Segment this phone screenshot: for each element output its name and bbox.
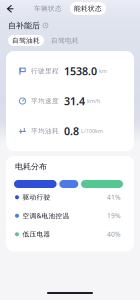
- button[interactable]: 自驾电耗: [47, 35, 83, 46]
- staticText: 40%: [107, 230, 121, 239]
- staticText: 1538.0: [64, 64, 97, 78]
- staticText: 19%: [107, 211, 121, 220]
- staticText: 平均油耗: [31, 127, 59, 135]
- staticText: 自驾油耗: [12, 36, 40, 45]
- button[interactable]: 车辆状态: [34, 2, 62, 15]
- button[interactable]: 自驾油耗: [8, 35, 44, 46]
- staticText: 能耗状态: [74, 4, 102, 13]
- button[interactable]: 能耗状态: [70, 2, 106, 15]
- staticText: 驱动行驶: [22, 193, 50, 201]
- staticText: 车辆状态: [34, 4, 62, 13]
- staticText: 行驶里程: [31, 67, 59, 75]
- staticText: 平均速度: [31, 97, 59, 105]
- staticText: 电耗分布: [15, 162, 47, 171]
- staticText: 低压电器: [22, 230, 50, 238]
- button[interactable]: Back: [3, 1, 17, 15]
- staticText: km/h: [87, 97, 100, 105]
- staticText: 自驾电耗: [51, 36, 79, 45]
- staticText: km: [99, 67, 107, 75]
- staticText: 41%: [107, 193, 121, 202]
- staticText: 31.4: [64, 94, 85, 108]
- staticText: 自补能后: [8, 21, 40, 30]
- staticText: 0.8: [64, 124, 79, 138]
- staticText: L/100km: [81, 127, 103, 135]
- staticText: 空调&电池控温: [22, 211, 69, 220]
